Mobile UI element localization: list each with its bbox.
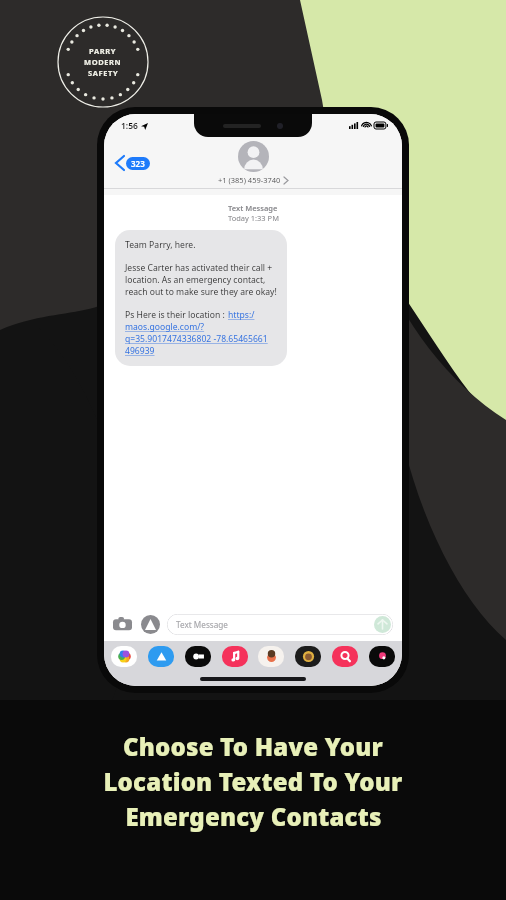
staticText: Choose To Have Your: [123, 730, 383, 763]
staticText: Text Message: [228, 203, 278, 213]
button[interactable]: Memoji: [258, 646, 284, 667]
staticText: PARRY: [89, 46, 117, 56]
button[interactable]: Photo sticker: [295, 646, 321, 667]
staticText: Emergency Contacts: [125, 800, 382, 833]
button[interactable]: Camera: [113, 615, 132, 634]
button[interactable]: Photos: [111, 646, 137, 667]
button[interactable]: Back: [112, 153, 154, 173]
staticText: Today 1:33 PM: [228, 213, 279, 223]
button[interactable]: Search: [332, 646, 358, 667]
staticText: +1 (385) 459-3740: [218, 175, 281, 185]
button[interactable]: Send: [374, 616, 391, 633]
staticText: maos.google.com/?: [125, 321, 205, 333]
staticText: 496939: [125, 345, 155, 357]
staticText: Team Parry, here.: [125, 239, 196, 251]
staticText: https:/: [228, 309, 255, 321]
staticText: Jesse Carter has activated their call +: [125, 262, 273, 274]
button[interactable]: Digital Touch: [369, 646, 395, 667]
button[interactable]: Team Parry, here.: [115, 230, 287, 366]
button[interactable]: App Store: [141, 615, 160, 634]
staticText: reach out to make sure they are okay!: [125, 286, 277, 298]
staticText: MODERN: [84, 57, 122, 67]
staticText: Location Texted To Your: [103, 765, 403, 798]
staticText: 1:56: [121, 120, 138, 132]
staticText: Ps Here is their location :: [125, 309, 228, 321]
button[interactable]: Apple TV: [185, 646, 211, 667]
staticText: q=35.9017474336802 -78.65465661: [125, 333, 268, 345]
button[interactable]: App Store: [148, 646, 174, 667]
button[interactable]: Text Message: [167, 614, 393, 635]
button[interactable]: Contact avatar: [238, 141, 269, 172]
staticText: 323: [131, 158, 145, 169]
staticText: Text Message: [176, 619, 228, 630]
button[interactable]: Music: [222, 646, 248, 667]
staticText: location. As an emergency contact,: [125, 274, 266, 286]
staticText: SAFETY: [88, 68, 119, 78]
